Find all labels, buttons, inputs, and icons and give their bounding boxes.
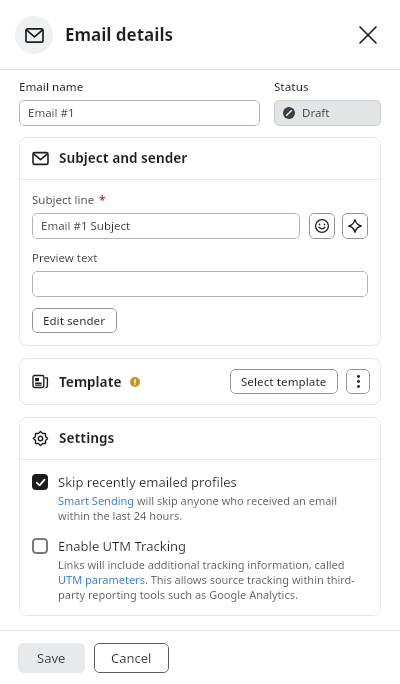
button[interactable]: More options xyxy=(346,369,370,394)
staticText: Edit sender xyxy=(43,313,106,329)
button[interactable]: Save xyxy=(18,643,85,673)
button[interactable]: Edit sender xyxy=(32,308,117,333)
staticText: Email details xyxy=(65,23,173,46)
staticText: Template xyxy=(59,373,122,391)
staticText: Subject line xyxy=(32,192,95,208)
staticText: Enable UTM Tracking xyxy=(58,537,187,555)
button[interactable]: Email #1 Subject xyxy=(32,213,300,239)
staticText: Settings xyxy=(59,429,115,447)
button[interactable]: Subject and sender xyxy=(19,137,381,179)
button[interactable]: Insert emoji xyxy=(309,213,335,239)
staticText: Select template xyxy=(241,374,327,390)
staticText: Links will include additional tracking i… xyxy=(58,557,368,602)
button[interactable]: Enable UTM Tracking xyxy=(32,537,368,602)
button[interactable] xyxy=(32,271,368,297)
staticText: Subject and sender xyxy=(59,149,188,167)
button[interactable]: Cancel xyxy=(94,643,169,673)
staticText: Email name xyxy=(19,79,84,95)
staticText: Email #1 xyxy=(28,105,75,121)
button[interactable]: Draft xyxy=(274,100,381,126)
staticText: Status xyxy=(274,79,309,95)
staticText: Cancel xyxy=(111,649,152,667)
staticText: * xyxy=(99,192,106,208)
staticText: Save xyxy=(37,649,66,667)
button[interactable]: Close xyxy=(350,17,386,53)
staticText: Smart Sending will skip anyone who recei… xyxy=(58,493,368,523)
staticText: Skip recently emailed profiles xyxy=(58,473,237,491)
button[interactable]: Skip recently emailed profiles xyxy=(32,473,368,523)
button[interactable]: AI suggestions xyxy=(342,213,368,239)
staticText: Draft xyxy=(302,105,330,121)
staticText: Email #1 Subject xyxy=(41,218,131,234)
button[interactable]: Email #1 xyxy=(19,100,260,126)
staticText: Preview text xyxy=(32,250,98,266)
button[interactable]: Select template xyxy=(230,369,338,394)
button[interactable]: Settings xyxy=(19,417,381,459)
